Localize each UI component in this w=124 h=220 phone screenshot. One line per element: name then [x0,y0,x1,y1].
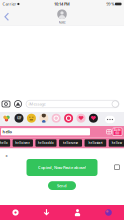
button[interactable]: Send [48,181,76,190]
button[interactable]: App seven [76,114,85,123]
staticText: hello [3,129,12,134]
staticText: 99 % [106,1,114,7]
staticText: x [6,153,8,158]
staticText: Carrier [2,1,16,7]
staticText: helloaddo [38,141,54,145]
button[interactable]: Close [3,152,11,158]
button[interactable]: Copy [113,163,121,171]
staticText: Send [57,183,67,188]
button[interactable]: Emoji [27,114,36,123]
button[interactable]: More apps [105,116,115,123]
button[interactable]: App Store [12,98,24,109]
button[interactable]: hellostart [84,139,106,147]
staticText: hellostart [88,141,102,145]
button[interactable]: Profile [62,205,93,220]
button[interactable]: App five [52,114,61,123]
button[interactable]: Images [14,114,23,123]
staticText: 10:14 PM [54,1,70,7]
button[interactable]: Autofill [113,128,124,136]
button[interactable]: hello [0,139,10,147]
staticText: hellorunse [62,141,78,145]
staticText: iMessage [28,101,45,107]
button[interactable]: Styles [0,205,31,220]
button[interactable]: hellow [109,139,124,147]
button[interactable]: Downloads [31,205,62,220]
button[interactable]: Back [0,9,14,24]
button[interactable]: Memoji [39,114,48,123]
button[interactable]: Settings [93,205,124,220]
button[interactable]: helloisme [13,139,33,147]
button[interactable]: helloaddo [35,139,56,147]
staticText: Copied, Now Paste above! [38,165,86,170]
button[interactable]: Camera [0,98,12,109]
button[interactable]: hellorunse [59,139,82,147]
staticText: GIF [17,116,21,120]
button[interactable]: Keyboard [105,128,113,136]
staticText: hellow [112,141,122,145]
button[interactable]: App six [64,114,73,123]
staticText: fill [115,132,119,135]
staticText: Kate [58,19,65,25]
button[interactable]: Photos [2,114,11,123]
button[interactable]: App eight [89,114,98,123]
staticText: hello [0,141,8,145]
staticText: Auto [114,128,121,132]
staticText: helloisme [15,141,30,145]
